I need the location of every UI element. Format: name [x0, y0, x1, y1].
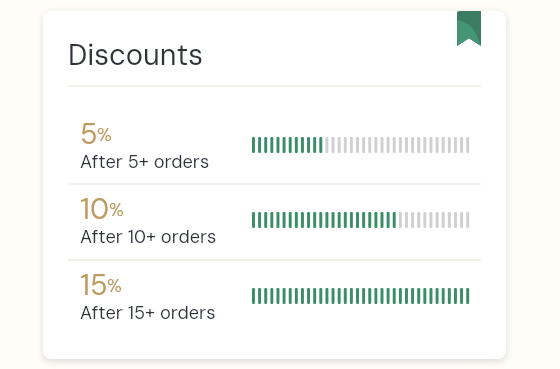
staticText: %: [109, 198, 124, 221]
staticText: After 5+ orders: [80, 150, 210, 174]
staticText: 10: [80, 190, 109, 228]
staticText: After 10+ orders: [80, 225, 217, 249]
staticText: 15: [80, 266, 108, 304]
staticText: %: [97, 123, 112, 146]
staticText: Discounts: [68, 36, 204, 74]
button[interactable]: Bookmark: [457, 11, 481, 46]
button[interactable]: 5: [43, 123, 506, 189]
staticText: %: [107, 274, 122, 297]
staticText: 5: [80, 115, 98, 153]
button[interactable]: 10: [43, 198, 506, 264]
staticText: After 15+ orders: [80, 301, 216, 325]
button[interactable]: 15: [43, 274, 506, 340]
